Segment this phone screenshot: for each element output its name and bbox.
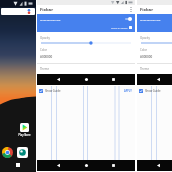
staticText: Color	[140, 48, 148, 52]
button[interactable]: Chrome	[2, 147, 13, 158]
button[interactable]: Show Guide	[139, 89, 161, 93]
button[interactable]: Back	[153, 74, 164, 85]
staticText: Play Store	[18, 133, 31, 137]
button[interactable]: Back	[53, 74, 64, 85]
button[interactable]: Search	[1, 8, 35, 15]
button[interactable]: Back	[53, 160, 64, 171]
button[interactable]: Recents	[108, 160, 119, 171]
staticText: Fixbar	[140, 7, 153, 13]
staticText: #000000	[40, 55, 53, 59]
button[interactable]: Show Bottom Bar	[37, 14, 135, 32]
staticText: Show Guide	[145, 89, 161, 93]
staticText: Show Bottom Bar	[40, 18, 61, 21]
button[interactable]: More options	[127, 5, 135, 14]
button[interactable]: Back	[153, 160, 164, 171]
button[interactable]	[137, 40, 172, 46]
staticText: Fixbar	[40, 7, 53, 13]
staticText: #000000	[140, 55, 153, 59]
button[interactable]: Camera	[17, 147, 28, 158]
staticText: APPLY	[124, 89, 132, 93]
button[interactable]: Home	[81, 74, 92, 85]
staticText: Theme	[140, 67, 150, 71]
staticText: Show in Status	[111, 26, 128, 29]
button[interactable]	[37, 40, 135, 46]
staticText: Show Bottom Bar	[140, 18, 161, 21]
staticText: Color	[40, 48, 48, 52]
staticText: Show Guide	[45, 89, 61, 93]
staticText: Opacity	[140, 36, 150, 40]
button[interactable]: Home	[81, 160, 92, 171]
staticText: Opacity	[40, 36, 50, 40]
button[interactable]: Play Store	[17, 123, 31, 137]
button[interactable]: APPLY	[123, 89, 133, 93]
button[interactable]: Recents	[108, 74, 119, 85]
staticText: Theme	[40, 67, 50, 71]
button[interactable]: Show Bottom Bar	[137, 14, 172, 32]
button[interactable]: Show Guide	[39, 89, 61, 93]
